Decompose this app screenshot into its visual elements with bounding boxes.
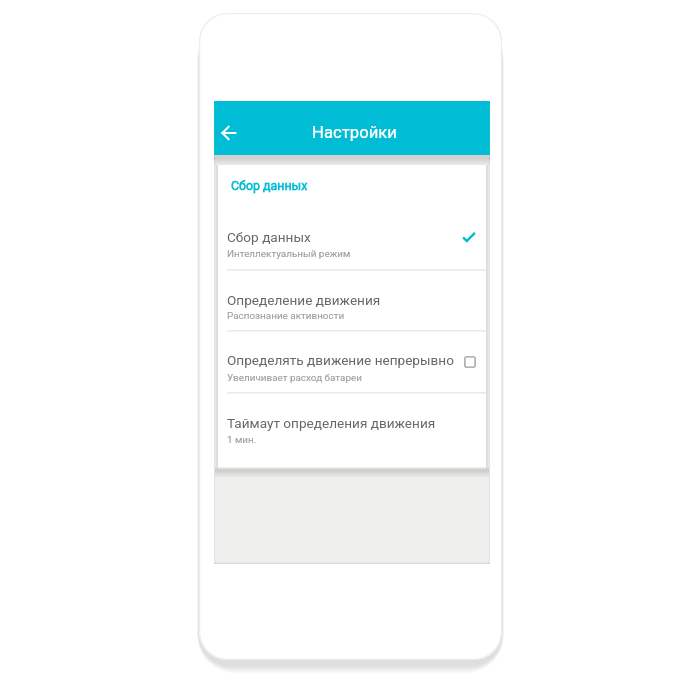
staticText: Сбор данных [227, 229, 311, 245]
button[interactable]: Checkbox [460, 352, 480, 372]
button[interactable]: Сбор данных [218, 203, 486, 269]
staticText: 1 мин. [227, 434, 257, 446]
button[interactable]: Back [212, 116, 246, 150]
staticText: Таймаут определения движения [227, 415, 436, 431]
staticText: Увеличивает расход батареи [227, 372, 362, 384]
staticText: Настройки [312, 123, 397, 143]
button[interactable]: Таймаут определения движения [218, 392, 486, 467]
button[interactable]: Определять движение непрерывно [218, 330, 486, 392]
staticText: Распознание активности [227, 310, 345, 322]
staticText: Определять движение непрерывно [227, 352, 454, 368]
button[interactable]: Enabled [459, 227, 479, 247]
staticText: Определение движения [227, 292, 381, 308]
staticText: Сбор данных [231, 178, 308, 193]
button[interactable]: Определение движения [218, 269, 486, 331]
staticText: Интеллектуальный режим [227, 248, 351, 260]
